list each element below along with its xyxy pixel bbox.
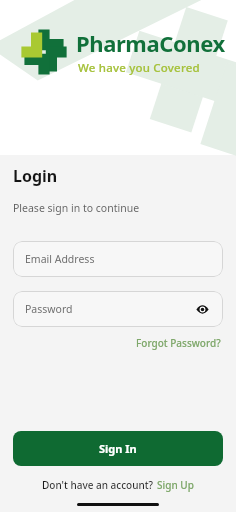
button[interactable]: Sign Up <box>156 476 195 494</box>
button[interactable]: Email Address <box>13 241 223 277</box>
staticText: Sign In <box>99 441 137 456</box>
staticText: Email Address <box>25 252 95 266</box>
staticText: Forgot Password? <box>136 336 221 350</box>
staticText: Sign Up <box>157 478 194 492</box>
staticText: Don't have an account? <box>42 478 156 492</box>
button[interactable]: Forgot Password? <box>134 333 223 353</box>
button[interactable]: Show password <box>193 300 211 318</box>
staticText: We have you Covered <box>78 60 200 76</box>
staticText: Please sign in to continue <box>13 201 140 215</box>
button[interactable]: Password <box>13 291 223 327</box>
staticText: PharmaConex <box>76 28 225 58</box>
staticText: Password <box>25 302 73 316</box>
staticText: Login <box>13 165 58 187</box>
button[interactable]: Sign In <box>13 431 223 466</box>
